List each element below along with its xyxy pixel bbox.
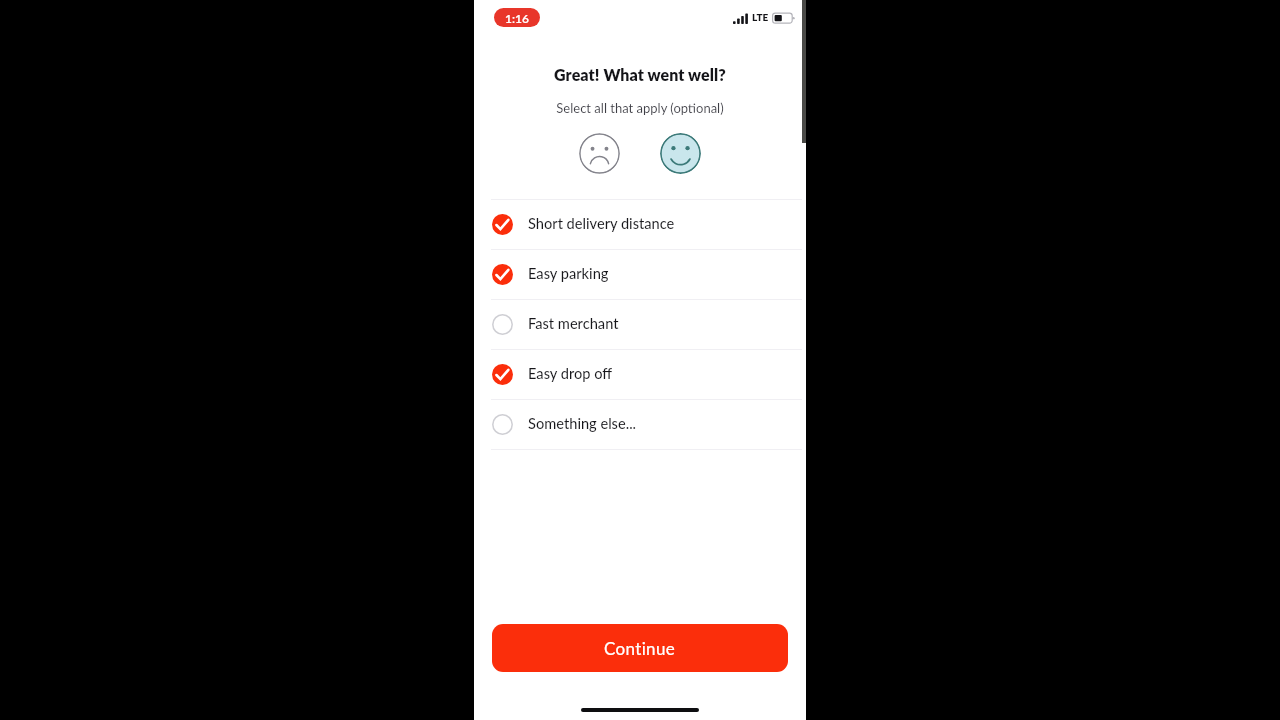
staticText: Continue [604,638,676,658]
button[interactable]: Rate bad [579,133,620,174]
staticText: Easy parking [528,265,609,283]
staticText: Great! What went well? [474,65,806,84]
button[interactable]: Fast merchant [491,299,802,349]
staticText: Something else... [528,415,637,433]
button[interactable]: Something else... [491,399,802,449]
staticText: 1:16 [505,11,529,25]
staticText: LTE [752,11,769,23]
staticText: Fast merchant [528,315,619,333]
staticText: Easy drop off [528,365,613,383]
button[interactable]: Continue [492,624,788,672]
button[interactable]: Easy parking [491,249,802,299]
staticText: Short delivery distance [528,215,675,233]
button[interactable]: Short delivery distance [491,199,802,249]
button[interactable]: Easy drop off [491,349,802,399]
button[interactable]: Rate good [660,133,701,174]
staticText: Select all that apply (optional) [474,100,806,116]
